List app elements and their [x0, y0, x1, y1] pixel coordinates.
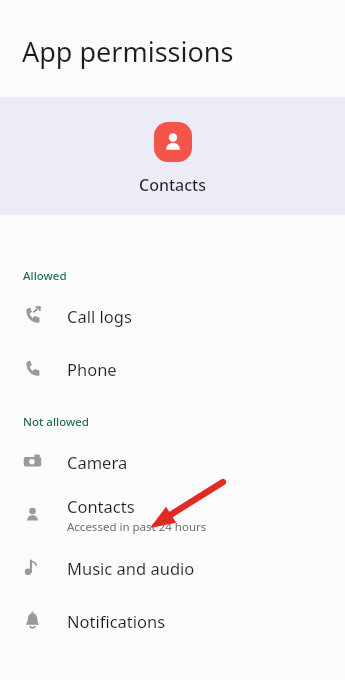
other: Camera permission	[23, 452, 42, 471]
staticText: Accessed in past 24 hours	[67, 519, 207, 535]
other: Phone permission	[23, 359, 42, 378]
staticText: App permissions	[22, 33, 234, 70]
staticText: Not allowed	[23, 414, 89, 430]
staticText: Contacts	[139, 174, 207, 196]
staticText: Contacts	[67, 495, 135, 517]
staticText: Notifications	[67, 610, 166, 632]
other: Contacts permission	[23, 505, 42, 524]
button[interactable]: Call logs permission	[0, 289, 345, 342]
staticText: Call logs	[67, 305, 132, 327]
button[interactable]: Contacts permission	[0, 488, 345, 541]
button[interactable]: Phone permission	[0, 342, 345, 395]
other: Notifications permission	[23, 611, 42, 630]
button[interactable]: Notifications permission	[0, 594, 345, 647]
other: Call logs permission	[23, 306, 42, 325]
staticText: Allowed	[23, 268, 67, 284]
button[interactable]: Music and audio permission	[0, 541, 345, 594]
staticText: Camera	[67, 451, 128, 473]
button[interactable]: Camera permission	[0, 435, 345, 488]
other: Music and audio permission	[23, 558, 42, 577]
staticText: Phone	[67, 358, 117, 380]
staticText: Music and audio	[67, 557, 195, 579]
